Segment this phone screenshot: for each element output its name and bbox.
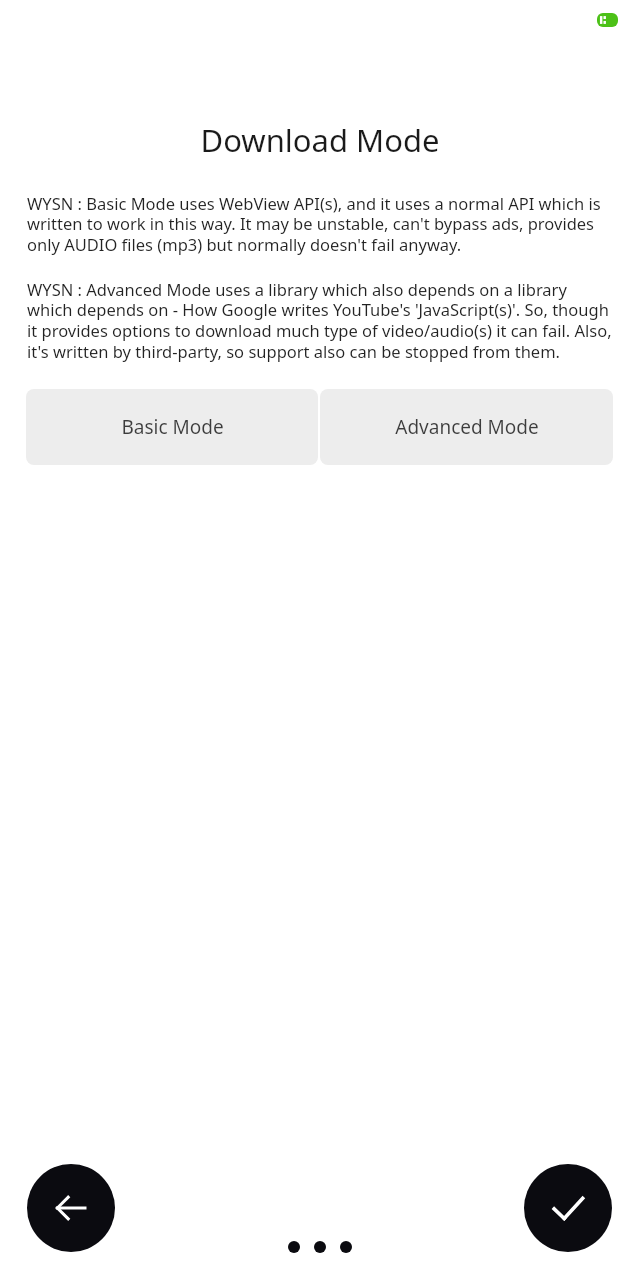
staticText: WYSN : Basic Mode uses WebView API(s), a… (27, 192, 614, 256)
button[interactable]: Advanced Mode (320, 389, 613, 465)
button[interactable]: Basic Mode (26, 389, 318, 465)
button[interactable]: Confirm (524, 1164, 612, 1252)
staticText: Basic Mode (121, 414, 224, 440)
staticText: WYSN : Advanced Mode uses a library whic… (27, 278, 614, 363)
button[interactable]: Back (27, 1164, 115, 1252)
staticText: Advanced Mode (395, 414, 539, 440)
staticText: Download Mode (0, 119, 640, 161)
